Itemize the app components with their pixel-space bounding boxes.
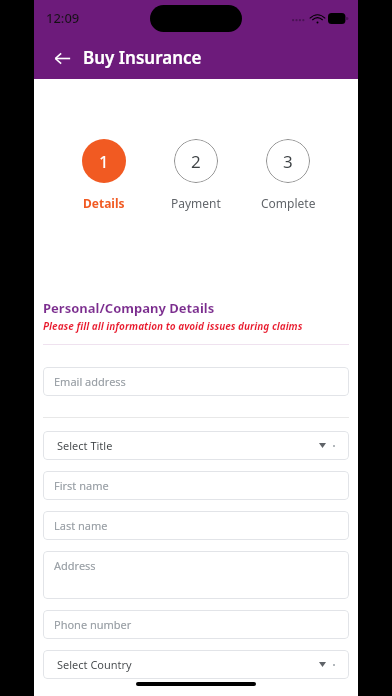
button[interactable]: Address — [43, 551, 349, 599]
staticText: Last name — [54, 518, 108, 533]
button[interactable]: 1 — [62, 139, 146, 211]
staticText: Details — [83, 195, 125, 211]
button[interactable]: Phone number — [43, 610, 349, 639]
staticText: First name — [54, 478, 109, 493]
staticText: 2 — [191, 150, 201, 173]
staticText: Select Country — [57, 657, 132, 672]
button[interactable]: 2 — [154, 139, 238, 211]
button[interactable]: First name — [43, 471, 349, 500]
button[interactable]: Select Country — [43, 650, 349, 679]
staticText: 1 — [99, 150, 109, 173]
staticText: Email address — [54, 374, 126, 389]
button[interactable]: 3 — [246, 139, 330, 211]
staticText: Complete — [261, 195, 316, 211]
staticText: Select Title — [57, 438, 113, 453]
staticText: Address — [54, 558, 96, 573]
staticText: Personal/Company Details — [43, 299, 215, 317]
staticText: Buy Insurance — [83, 46, 202, 69]
staticText: Please fill all information to avoid iss… — [43, 319, 303, 333]
button[interactable]: Select Title — [43, 431, 349, 460]
staticText: 12:09 — [46, 9, 80, 27]
button[interactable]: Email address — [43, 367, 349, 396]
staticText: 3 — [283, 150, 293, 173]
staticText: Phone number — [54, 617, 132, 632]
button[interactable]: Last name — [43, 511, 349, 540]
staticText: Payment — [171, 195, 221, 211]
button[interactable]: Back — [48, 44, 76, 72]
